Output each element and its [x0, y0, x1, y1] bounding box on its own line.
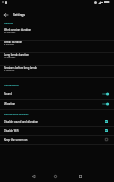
button[interactable]: Home — [49, 170, 62, 182]
button[interactable]: Navigate back — [0, 9, 11, 20]
staticText: Disable sound and vibration — [4, 120, 105, 124]
staticText: 15 minutes — [4, 56, 16, 59]
staticText: Work session duration — [4, 28, 32, 32]
staticText: Disable WiFi — [4, 129, 105, 133]
staticText: Sessions before long break — [4, 66, 37, 70]
staticText: General — [4, 21, 13, 24]
staticText: 4 sessions — [4, 69, 15, 72]
staticText: 5 minutes — [4, 43, 14, 46]
staticText: Vibration — [4, 102, 102, 106]
button[interactable]: Break duration — [0, 38, 114, 51]
staticText: Keep the screen on — [4, 138, 105, 142]
button[interactable]: Work session duration — [0, 26, 114, 39]
button[interactable]: Vibration — [0, 99, 114, 109]
button[interactable]: Disable WiFi — [0, 126, 114, 135]
staticText: Long break duration — [4, 53, 29, 57]
staticText: During work sessions — [4, 112, 29, 115]
staticText: Break duration — [4, 40, 23, 44]
button[interactable]: Recent apps — [74, 170, 87, 182]
button[interactable]: Back — [27, 170, 40, 182]
staticText: Settings — [13, 13, 26, 17]
button[interactable]: Sound — [0, 89, 114, 99]
staticText: 25 minutes — [4, 31, 16, 34]
button[interactable]: Disable sound and vibration — [0, 117, 114, 126]
staticText: Sound — [4, 92, 102, 96]
button[interactable]: Long break duration — [0, 51, 114, 64]
button[interactable]: Sessions before long break — [0, 64, 114, 77]
button[interactable]: Keep the screen on — [0, 135, 114, 144]
staticText: Notifications — [4, 83, 19, 86]
